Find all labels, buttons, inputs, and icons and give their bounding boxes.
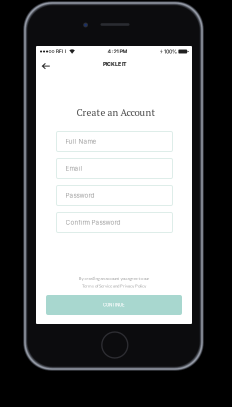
staticText: Email	[65, 165, 82, 172]
button[interactable]: Email	[56, 158, 172, 178]
staticText: Confirm Password	[65, 219, 120, 226]
button[interactable]: Full Name	[56, 131, 172, 151]
button[interactable]: Back	[37, 57, 55, 75]
staticText: By creating an account you agree to our	[78, 276, 149, 281]
staticText: PICKLE IT	[103, 61, 127, 67]
staticText: 100%	[164, 48, 177, 55]
staticText: Create an Account	[76, 106, 155, 119]
staticText: Terms of Service and Privacy Policy	[82, 283, 146, 288]
staticText: Full Name	[65, 138, 96, 145]
staticText: 4:21 PM	[107, 48, 127, 55]
staticText: Password	[65, 192, 94, 199]
button[interactable]: Password	[56, 185, 172, 205]
staticText: BELL	[56, 48, 68, 55]
button[interactable]: CONTINUE	[46, 295, 182, 315]
staticText: CONTINUE	[103, 302, 125, 308]
button[interactable]: Confirm Password	[56, 212, 172, 232]
